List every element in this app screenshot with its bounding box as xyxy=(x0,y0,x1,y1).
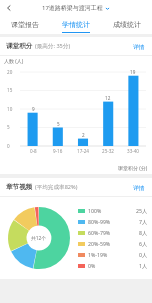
staticText: 详情 xyxy=(133,184,145,191)
button[interactable]: 成绩统计 xyxy=(101,16,152,34)
staticText: 17-24 xyxy=(77,148,89,154)
staticText: 共12个 xyxy=(31,235,47,242)
staticText: (最高分: 35分) xyxy=(35,42,71,50)
staticText: 详情 xyxy=(133,43,145,50)
button[interactable]: 100% xyxy=(78,205,152,216)
button[interactable]: 20%-59% xyxy=(78,238,152,249)
staticText: 章节视频 xyxy=(6,183,33,191)
staticText: 1%-19% xyxy=(88,251,108,258)
staticText: 5 xyxy=(57,121,60,127)
staticText: 9-16 xyxy=(53,148,63,154)
staticText: 课堂积分 (分) xyxy=(118,165,148,172)
staticText: 15 xyxy=(7,87,13,93)
staticText: 0 xyxy=(7,143,10,149)
staticText: 0人 xyxy=(139,251,148,258)
staticText: 100% xyxy=(88,207,102,214)
staticText: 5 xyxy=(7,124,10,130)
staticText: 20%-59% xyxy=(88,240,111,247)
staticText: 1人 xyxy=(139,262,148,269)
button[interactable]: 0% xyxy=(78,260,152,271)
staticText: (平均完成率82%) xyxy=(35,183,78,191)
button[interactable]: 课堂报告 xyxy=(0,16,50,34)
staticText: 8人 xyxy=(139,229,148,236)
staticText: 60%-79% xyxy=(88,229,111,236)
button[interactable]: 详情 xyxy=(132,182,146,193)
staticText: 12 xyxy=(105,95,111,101)
staticText: 17道路桥梁与渡河工程 xyxy=(42,4,103,12)
staticText: 2 xyxy=(82,132,85,138)
staticText: 学情统计 xyxy=(62,20,90,29)
staticText: 9 xyxy=(32,106,35,112)
staticText: 25-32 xyxy=(102,148,114,154)
staticText: 20 xyxy=(7,69,13,75)
staticText: 7人 xyxy=(139,218,148,225)
staticText: 课堂报告 xyxy=(11,20,39,29)
staticText: 10 xyxy=(7,106,13,112)
button[interactable]: Back xyxy=(2,1,16,15)
button[interactable]: 17道路桥梁与渡河工程 xyxy=(42,4,110,12)
button[interactable]: 60%-79% xyxy=(78,227,152,238)
staticText: 33-40 xyxy=(127,148,139,154)
staticText: 课堂积分 xyxy=(6,42,33,50)
staticText: 25人 xyxy=(136,207,148,214)
staticText: 0% xyxy=(88,262,96,269)
staticText: 19 xyxy=(130,69,136,75)
button[interactable]: 1%-19% xyxy=(78,249,152,260)
button[interactable]: 详情 xyxy=(132,41,146,52)
staticText: 成绩统计 xyxy=(113,20,141,29)
staticText: 80%-99% xyxy=(88,218,111,225)
staticText: 6人 xyxy=(139,240,148,247)
staticText: 人数 (人) xyxy=(4,58,24,65)
button[interactable]: 80%-99% xyxy=(78,216,152,227)
button[interactable]: 学情统计 xyxy=(50,16,101,34)
staticText: 0-8 xyxy=(30,148,37,154)
